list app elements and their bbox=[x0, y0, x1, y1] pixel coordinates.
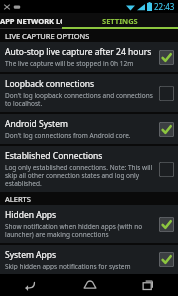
staticText: Android System bbox=[5, 118, 68, 130]
button[interactable]: System Apps bbox=[0, 245, 178, 274]
button[interactable]: Enabled bbox=[159, 252, 174, 267]
staticText: APP NETWORK LOG bbox=[0, 16, 62, 26]
staticText: Auto-stop live capture after 24 hours bbox=[5, 46, 152, 58]
staticText: Log only established connections. Note: … bbox=[5, 163, 155, 188]
staticText: Established Connections bbox=[5, 150, 103, 162]
button[interactable]: Disabled bbox=[159, 86, 174, 101]
staticText: Show notification when hidden apps (with… bbox=[5, 222, 155, 239]
staticText: Don't log loopback connections and conne… bbox=[5, 91, 155, 108]
button[interactable]: APP NETWORK LOG bbox=[0, 13, 62, 29]
button[interactable]: Recent apps bbox=[119, 274, 178, 296]
button[interactable]: Enabled bbox=[159, 50, 174, 65]
staticText: Hidden Apps bbox=[5, 209, 57, 221]
staticText: Skip hidden apps notifications for syste… bbox=[5, 262, 155, 270]
button[interactable]: SETTINGS bbox=[62, 13, 178, 29]
staticText: 22:43 bbox=[154, 1, 175, 12]
staticText: Loopback connections bbox=[5, 78, 95, 90]
staticText: The live capture will be stopped in 0h 1… bbox=[5, 59, 134, 68]
staticText: LIVE CAPTURE OPTIONS bbox=[5, 31, 90, 41]
staticText: Don't log connections from Android core. bbox=[5, 131, 131, 140]
button[interactable]: Hidden Apps bbox=[0, 205, 178, 243]
button[interactable]: Back bbox=[0, 274, 60, 296]
button[interactable]: Established Connections bbox=[0, 146, 178, 192]
staticText: SETTINGS bbox=[102, 16, 138, 26]
button[interactable]: Android System bbox=[0, 114, 178, 144]
staticText: ALERTS bbox=[5, 194, 31, 204]
button[interactable]: Home bbox=[60, 274, 119, 296]
button[interactable]: Enabled bbox=[159, 122, 174, 137]
button[interactable]: Disabled bbox=[159, 162, 174, 177]
button[interactable]: Enabled bbox=[159, 217, 174, 232]
button[interactable]: Loopback connections bbox=[0, 74, 178, 112]
staticText: System Apps bbox=[5, 249, 57, 261]
button[interactable]: Auto-stop live capture after 24 hours bbox=[0, 42, 178, 72]
